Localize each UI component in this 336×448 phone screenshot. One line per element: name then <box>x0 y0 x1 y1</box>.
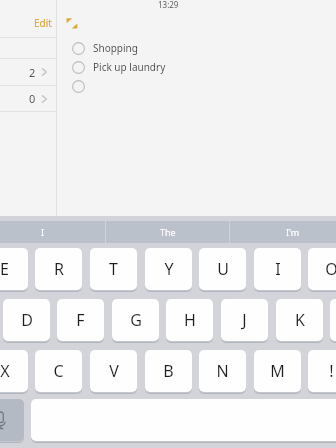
staticText: D <box>21 309 33 331</box>
button[interactable]: O <box>308 248 336 290</box>
button[interactable] <box>57 77 336 96</box>
staticText: E <box>0 258 9 280</box>
button[interactable]: I <box>254 248 301 290</box>
staticText: ! <box>329 360 334 382</box>
staticText: M <box>270 360 285 382</box>
button[interactable]: H <box>166 299 213 341</box>
staticText: H <box>184 309 196 331</box>
staticText: Y <box>164 258 174 280</box>
staticText: 0 <box>29 91 36 106</box>
button[interactable]: I'm <box>230 221 336 243</box>
staticText: X <box>0 360 10 382</box>
staticText: F <box>76 309 85 331</box>
staticText: J <box>242 309 247 331</box>
button[interactable]: Dictate <box>0 399 24 441</box>
button[interactable]: N <box>199 350 246 392</box>
button[interactable]: M <box>254 350 301 392</box>
button[interactable]: G <box>112 299 159 341</box>
staticText: 2 <box>29 65 36 80</box>
button[interactable]: B <box>145 350 192 392</box>
staticText: U <box>217 258 229 280</box>
button[interactable]: F <box>57 299 104 341</box>
button[interactable]: L <box>330 299 336 341</box>
button[interactable]: Collapse sidebar <box>66 17 78 29</box>
button[interactable]: Y <box>145 248 192 290</box>
staticText: I'm <box>286 226 300 238</box>
button[interactable]: D <box>3 299 50 341</box>
button[interactable]: U <box>199 248 246 290</box>
button[interactable]: T <box>90 248 137 290</box>
button[interactable]: K <box>276 299 323 341</box>
staticText: I <box>275 258 281 280</box>
staticText: O <box>325 258 336 280</box>
staticText: R <box>54 258 64 280</box>
staticText: B <box>163 360 174 382</box>
staticText: T <box>109 258 118 280</box>
button[interactable]: X <box>0 350 28 392</box>
button[interactable]: R <box>35 248 82 290</box>
staticText: V <box>109 360 119 382</box>
button[interactable]: Shopping <box>57 39 336 58</box>
staticText: Shopping <box>93 41 138 55</box>
button[interactable]: I <box>0 221 105 243</box>
staticText: Pick up laundry <box>93 60 166 74</box>
button[interactable]: C <box>35 350 82 392</box>
staticText: N <box>216 360 229 382</box>
button[interactable]: J <box>221 299 268 341</box>
button[interactable]: The <box>105 221 230 243</box>
staticText: K <box>295 309 305 331</box>
staticText: Edit <box>34 16 52 30</box>
button[interactable]: E <box>0 248 28 290</box>
staticText: 13:29 <box>158 0 179 10</box>
button[interactable]: 0 <box>0 86 56 111</box>
button[interactable]: V <box>90 350 137 392</box>
button[interactable]: 2 <box>0 59 56 85</box>
button[interactable]: Pick up laundry <box>57 58 336 77</box>
staticText: The <box>160 226 176 238</box>
staticText: G <box>130 309 142 331</box>
staticText: C <box>53 360 64 382</box>
button[interactable]: Edit <box>0 10 56 36</box>
button[interactable]: ! <box>308 350 336 392</box>
staticText: I <box>41 226 45 238</box>
